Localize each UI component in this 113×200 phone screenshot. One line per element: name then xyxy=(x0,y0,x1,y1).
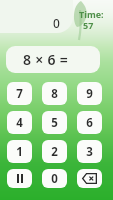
button[interactable]: 8 xyxy=(42,82,67,105)
button[interactable]: Pause xyxy=(7,169,32,188)
button[interactable]: Backspace xyxy=(77,169,102,188)
button[interactable]: 5 xyxy=(42,111,67,134)
staticText: 57 xyxy=(83,19,94,31)
button[interactable]: 8 × 6 = xyxy=(6,46,100,73)
button[interactable]: 4 xyxy=(7,111,32,134)
button[interactable]: 1 xyxy=(7,140,32,163)
button[interactable]: 2 xyxy=(42,140,67,163)
button[interactable]: 0 xyxy=(0,0,73,33)
button[interactable]: 9 xyxy=(77,82,102,105)
staticText: 4 xyxy=(16,115,23,131)
staticText: 5 xyxy=(51,115,58,131)
button[interactable]: 0 xyxy=(42,169,67,188)
button[interactable]: 6 xyxy=(77,111,102,134)
staticText: 7 xyxy=(16,86,23,102)
staticText: 3 xyxy=(86,144,93,160)
staticText: 9 xyxy=(86,86,93,102)
staticText: 6 xyxy=(86,115,93,131)
staticText: 0 xyxy=(53,15,60,31)
staticText: 2 xyxy=(51,144,58,160)
staticText: 1 xyxy=(16,144,23,160)
staticText: 0 xyxy=(51,171,58,187)
staticText: 8 × 6 = xyxy=(23,50,69,69)
staticText: 8 xyxy=(51,86,58,102)
button[interactable]: 7 xyxy=(7,82,32,105)
button[interactable]: 3 xyxy=(77,140,102,163)
staticText: Time: xyxy=(79,8,104,20)
